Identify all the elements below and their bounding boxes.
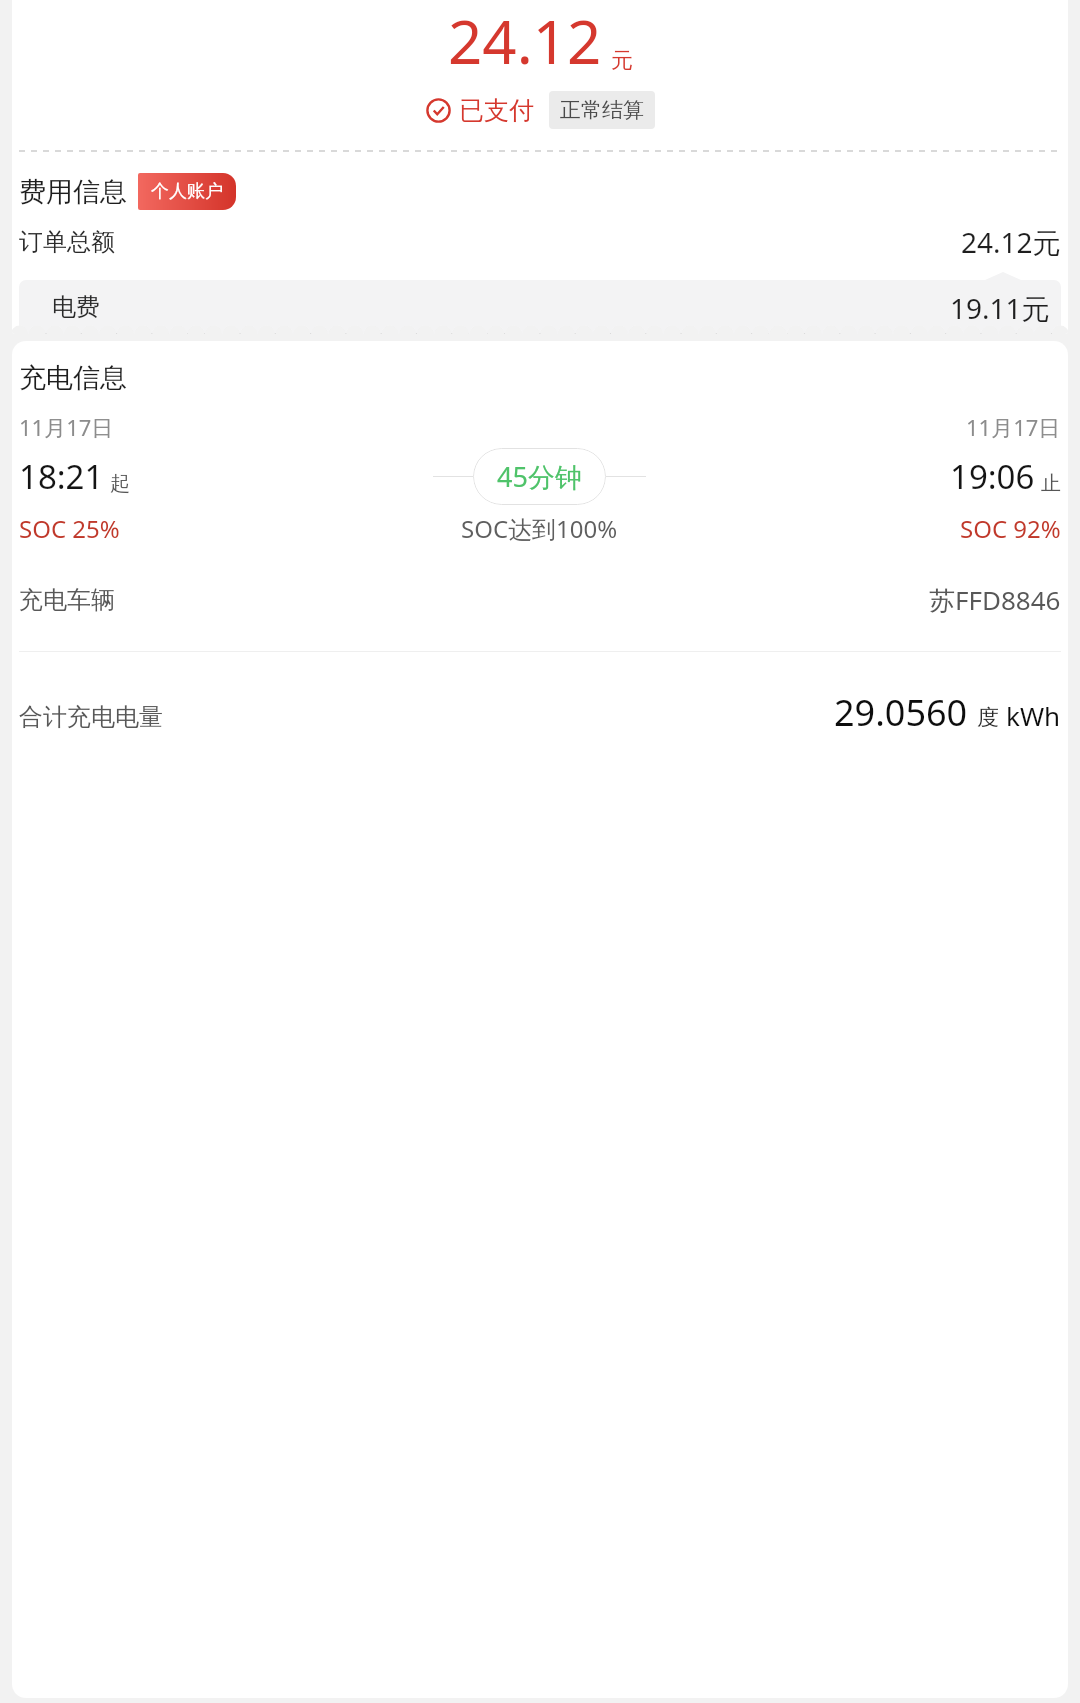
staticText: 起 [110,471,130,496]
staticText: 费用信息 [19,175,127,209]
button[interactable]: 个人账户 [138,173,236,210]
staticText: SOC达到100% [461,512,618,545]
staticText: 度 [977,704,999,732]
staticText: 11月17日 [19,412,114,442]
staticText: SOC 92% [960,512,1061,545]
staticText: 19:06 [950,454,1035,499]
staticText: 苏FFD8846 [929,582,1061,618]
staticText: 11月17日 [966,412,1061,442]
staticText: 充电信息 [19,361,127,395]
staticText: 订单总额 [19,227,115,257]
button[interactable]: 正常结算 [549,91,655,129]
staticText: 正常结算 [560,97,644,123]
staticText: 24.12 [448,0,602,82]
staticText: 18:21 [19,454,104,499]
staticText: 45分钟 [497,458,582,495]
staticText: 元 [611,47,633,75]
staticText: 19.11元 [950,289,1050,325]
staticText: kWh [1006,698,1061,733]
staticText: 充电车辆 [19,585,115,615]
staticText: 个人账户 [151,180,223,203]
staticText: SOC 25% [19,512,120,545]
staticText: 电费 [52,292,100,322]
button[interactable]: 45分钟 [473,448,606,505]
staticText: 已支付 [459,95,534,126]
staticText: 29.0560 [834,688,968,737]
staticText: 合计充电电量 [19,702,163,732]
staticText: 24.12元 [961,223,1061,261]
staticText: 止 [1041,471,1061,496]
